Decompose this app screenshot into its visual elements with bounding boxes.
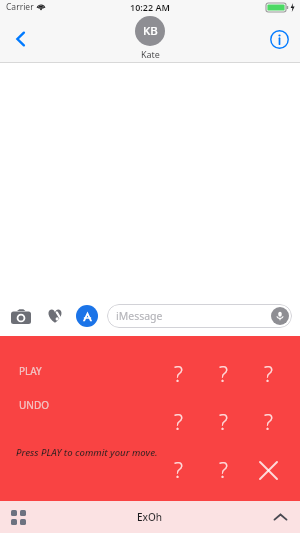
staticText: ? [219,360,228,389]
staticText: KB [143,23,158,39]
staticText: PLAY [19,364,42,378]
button[interactable]: PLAY [19,362,42,380]
staticText: ? [264,408,273,437]
staticText: ? [264,360,273,389]
button[interactable]: Cell 3 [246,350,291,398]
button[interactable]: Cell 6 [246,398,291,446]
button[interactable]: App Store [76,305,98,327]
button[interactable]: UNDO [19,396,50,414]
staticText: ? [174,456,183,485]
button[interactable]: Cell 8 [201,446,246,494]
button[interactable]: iMessage [107,304,292,328]
button[interactable]: Camera [8,303,34,329]
staticText: ExOh [137,510,163,524]
button[interactable]: Cell 4 [156,398,201,446]
staticText: ? [219,456,228,485]
staticText: Kate [141,48,160,60]
staticText: Press PLAY to commit your move. [16,446,158,459]
button[interactable]: Digital Touch [42,303,68,329]
staticText: UNDO [19,398,50,412]
button[interactable]: ExOh [137,510,163,524]
staticText: ? [174,408,183,437]
button[interactable]: KB [135,16,165,60]
staticText: Carrier [6,1,34,13]
button[interactable]: Apps [6,505,30,529]
staticText: ? [174,360,183,389]
button[interactable]: Cell 9 [246,446,291,494]
button[interactable]: Cell 2 [201,350,246,398]
button[interactable]: Cell 5 [201,398,246,446]
button[interactable]: Expand [268,505,292,529]
staticText: 10:22 AM [130,1,170,13]
button[interactable]: Cell 1 [156,350,201,398]
button[interactable]: Back [4,22,38,56]
button[interactable]: Details [264,24,294,54]
staticText: iMessage [116,309,163,323]
other: Dictate [271,307,289,325]
staticText: ? [219,408,228,437]
button[interactable]: Cell 7 [156,446,201,494]
